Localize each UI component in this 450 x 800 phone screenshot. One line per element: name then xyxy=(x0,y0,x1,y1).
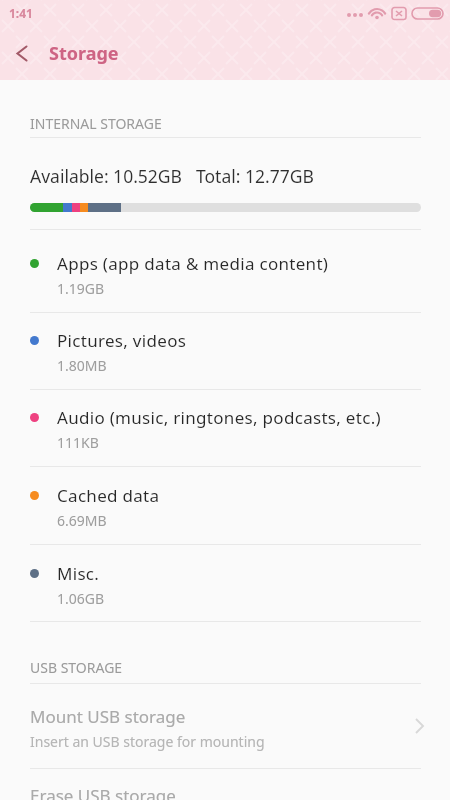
staticText: Pictures, videos xyxy=(57,329,187,352)
staticText: 1.06GB xyxy=(57,589,105,608)
staticText: Audio (music, ringtones, podcasts, etc.) xyxy=(57,406,381,429)
staticText: 1:41 xyxy=(9,5,33,21)
staticText: 1.19GB xyxy=(57,279,105,298)
button[interactable]: Erase USB storage xyxy=(0,769,450,800)
button[interactable]: Cached data xyxy=(0,467,450,544)
staticText: Storage xyxy=(49,41,119,66)
button[interactable]: Misc. xyxy=(0,545,450,621)
button[interactable]: Available: 10.52GB xyxy=(0,138,450,229)
button[interactable]: Pictures, videos xyxy=(0,313,450,389)
staticText: 1.80MB xyxy=(57,356,107,375)
button[interactable]: Mount USB storage xyxy=(0,684,450,768)
staticText: Erase USB storage xyxy=(30,784,176,800)
staticText: INTERNAL STORAGE xyxy=(30,114,162,133)
staticText: 6.69MB xyxy=(57,511,107,530)
staticText: USB STORAGE xyxy=(30,658,123,677)
staticText: Apps (app data & media content) xyxy=(57,252,329,275)
button[interactable]: Apps (app data & media content) xyxy=(0,230,450,312)
staticText: Misc. xyxy=(57,562,100,585)
staticText: Insert an USB storage for mounting xyxy=(30,732,265,751)
staticText: Cached data xyxy=(57,484,160,507)
staticText: Total: 12.77GB xyxy=(196,164,314,188)
staticText: 111KB xyxy=(57,433,99,452)
button[interactable]: Audio (music, ringtones, podcasts, etc.) xyxy=(0,390,450,466)
staticText: Mount USB storage xyxy=(30,705,186,728)
button[interactable] xyxy=(0,31,44,75)
staticText: Available: 10.52GB xyxy=(30,164,182,188)
